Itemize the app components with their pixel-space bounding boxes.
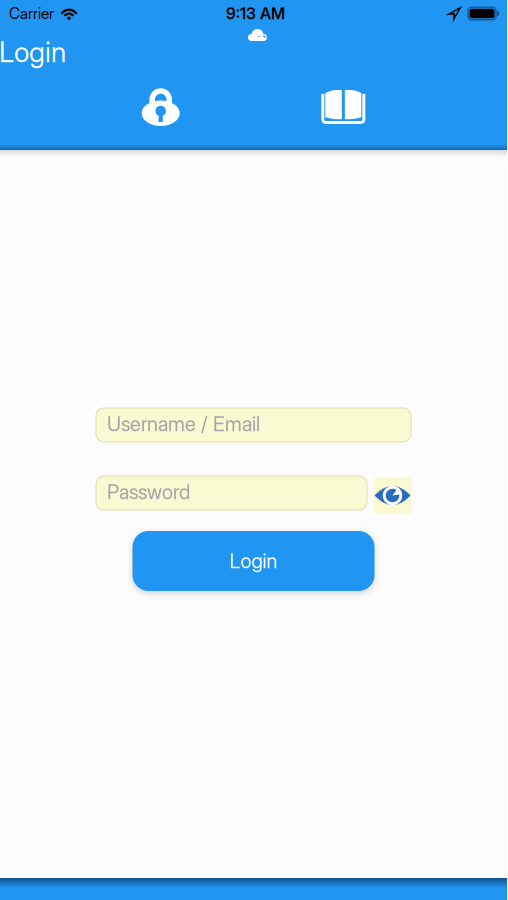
button[interactable]: Register <box>321 89 365 124</box>
button[interactable]: Password <box>96 476 367 510</box>
staticText: Username / Email <box>107 412 260 436</box>
staticText: Login <box>0 35 66 69</box>
button[interactable]: Show password <box>374 476 411 513</box>
button[interactable]: Login <box>132 531 374 591</box>
staticText: Carrier <box>9 4 54 23</box>
button[interactable]: Username / Email <box>96 408 411 442</box>
staticText: Login <box>229 549 277 573</box>
staticText: 9:13 AM <box>226 4 285 23</box>
staticText: Password <box>107 480 190 504</box>
button[interactable]: Login <box>142 87 180 126</box>
